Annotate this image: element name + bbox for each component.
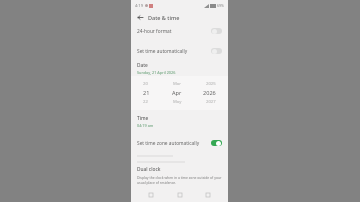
- staticText: Date: [137, 62, 148, 69]
- staticText: 21: [143, 89, 150, 97]
- staticText: Mar: [173, 81, 181, 87]
- staticText: Apr: [172, 89, 182, 97]
- staticText: Dual clock: [137, 166, 161, 173]
- staticText: 2026: [203, 89, 216, 97]
- staticText: Set time zone automatically: [137, 140, 200, 147]
- button[interactable]: Dual clock: [131, 163, 228, 188]
- button[interactable]: Set time automatically: [131, 44, 228, 58]
- button[interactable]: 24-hour format: [131, 24, 228, 38]
- staticText: 2027: [206, 99, 216, 105]
- button[interactable]: Toggle on: [211, 140, 222, 146]
- button[interactable]: Home: [171, 188, 189, 202]
- staticText: Sunday, 21 April 2026: [137, 70, 176, 75]
- staticText: May: [173, 99, 182, 105]
- staticText: 22: [143, 99, 148, 105]
- staticText: Date & time: [148, 14, 180, 21]
- staticText: 04:19 am: [137, 123, 154, 128]
- staticText: usual place of residence.: [137, 180, 177, 185]
- button[interactable]: Set time zone automatically: [131, 136, 228, 150]
- staticText: 20: [143, 81, 148, 87]
- button[interactable]: Toggle off: [211, 28, 222, 34]
- staticText: 24-hour format: [137, 28, 172, 35]
- staticText: 2025: [206, 81, 216, 87]
- button[interactable]: Back: [136, 13, 145, 22]
- staticText: Time: [137, 115, 149, 122]
- staticText: 4:19: [135, 3, 143, 8]
- button[interactable]: Recents: [142, 188, 160, 202]
- staticText: Set time automatically: [137, 48, 188, 55]
- button[interactable]: Back: [199, 188, 217, 202]
- button[interactable]: Toggle off: [211, 48, 222, 54]
- staticText: Display the clock when in a time zone ou…: [137, 175, 222, 180]
- staticText: 69%: [217, 3, 224, 8]
